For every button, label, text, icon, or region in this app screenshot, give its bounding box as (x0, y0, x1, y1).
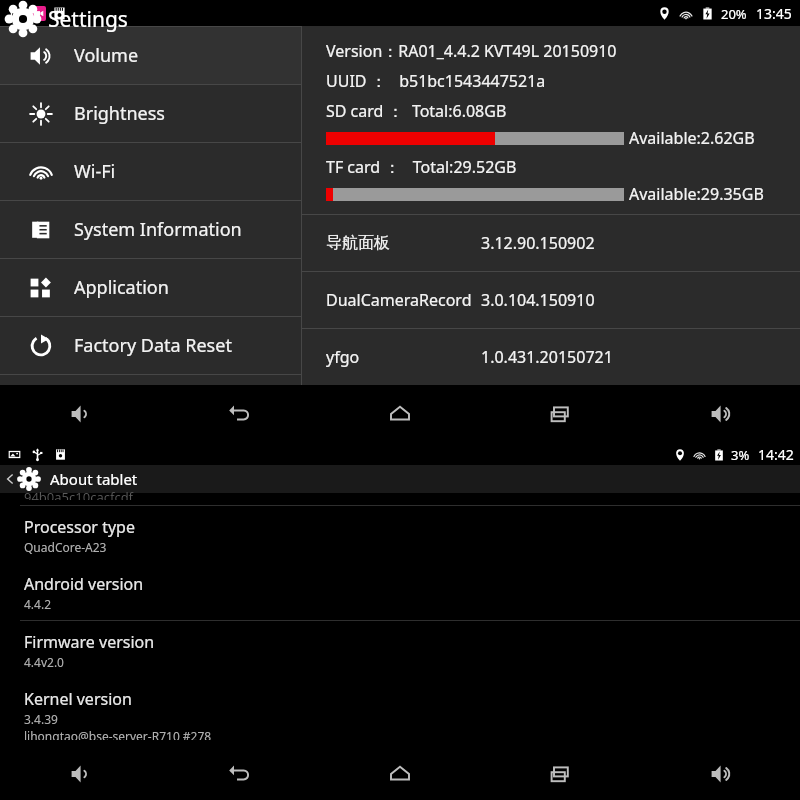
staticText: lihongtao@bse-server-R710 #278 (24, 728, 212, 740)
button[interactable]: Wi-Fi (0, 143, 301, 200)
button[interactable]: Volume (0, 27, 301, 84)
staticText: System Information (74, 217, 242, 242)
staticText: yfgo (326, 346, 481, 368)
staticText: 20% (721, 5, 747, 23)
staticText: Firmware version (24, 631, 155, 653)
staticText: About tablet (50, 469, 138, 489)
button[interactable]: Back (160, 385, 320, 443)
staticText: QuadCore-A23 (24, 539, 107, 555)
staticText: SD card ： Total:6.08GB (326, 100, 507, 122)
button[interactable]: Home (320, 748, 480, 800)
button[interactable]: yfgo (302, 329, 800, 385)
button[interactable]: Factory Data Reset (0, 317, 301, 374)
button[interactable]: Brightness (0, 85, 301, 142)
other: Back (4, 473, 16, 485)
staticText: Brightness (74, 101, 165, 126)
staticText: 4.4v2.0 (24, 654, 64, 670)
staticText: UUID ： b51bc1543447521a (326, 70, 546, 92)
staticText: Volume (74, 43, 139, 68)
staticText: Android version (24, 573, 144, 595)
button[interactable]: Kernel version (0, 678, 800, 748)
staticText: Kernel version (24, 688, 132, 710)
staticText: Processor type (24, 516, 135, 538)
staticText: 14:42 (758, 445, 794, 464)
button[interactable]: 导航面板 (302, 215, 800, 271)
staticText: 4.4.2 (24, 596, 52, 612)
button[interactable]: Back (160, 748, 320, 800)
staticText: 3.0.104.150910 (481, 289, 595, 311)
staticText: 3% (731, 446, 750, 464)
staticText: 3.4.39 (24, 711, 58, 727)
button[interactable]: Volume up (640, 748, 800, 800)
button[interactable]: Recents (480, 385, 640, 443)
button[interactable]: Android version (0, 563, 800, 620)
button[interactable]: Recents (480, 748, 640, 800)
button[interactable]: Processor type (0, 506, 800, 563)
button[interactable]: Home (320, 385, 480, 443)
staticText: TF card ： Total:29.52GB (326, 156, 517, 178)
button[interactable]: DualCameraRecord (302, 272, 800, 328)
staticText: 13:45 (756, 4, 792, 23)
button[interactable]: Volume down (0, 385, 160, 443)
button[interactable]: Volume up (640, 385, 800, 443)
button[interactable]: System Information (0, 201, 301, 258)
staticText: Wi-Fi (74, 159, 116, 184)
staticText: 94b0a5c10cacfcdf (24, 488, 134, 500)
staticText: Version：RA01_4.4.2 KVT49L 20150910 (326, 40, 617, 62)
staticText: 导航面板 (326, 233, 481, 253)
staticText: DualCameraRecord (326, 289, 481, 311)
staticText: 1.0.431.20150721 (481, 346, 613, 368)
staticText: Application (74, 275, 169, 300)
staticText: Settings (48, 5, 128, 34)
button[interactable]: Volume down (0, 748, 160, 800)
button[interactable]: Application (0, 259, 301, 316)
staticText: Available:29.35GB (629, 183, 764, 205)
staticText: Available:2.62GB (629, 127, 755, 149)
button[interactable]: Back (0, 465, 800, 493)
button[interactable]: Firmware version (0, 621, 800, 678)
staticText: Factory Data Reset (74, 333, 232, 358)
staticText: 3.12.90.150902 (481, 232, 595, 254)
